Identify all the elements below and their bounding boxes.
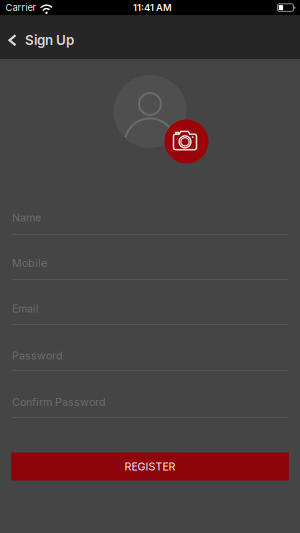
button[interactable]: Email: [12, 289, 288, 325]
staticText: REGISTER: [124, 460, 175, 473]
staticText: 11:41 AM: [133, 2, 172, 13]
button[interactable]: Name: [12, 199, 288, 235]
staticText: Sign Up: [25, 32, 74, 48]
button[interactable]: Mobile: [12, 244, 288, 280]
button[interactable]: Add profile photo: [164, 119, 208, 163]
button[interactable]: Confirm Password: [12, 382, 288, 418]
staticText: Password: [12, 349, 63, 362]
staticText: Mobile: [12, 257, 47, 269]
staticText: Carrier: [5, 2, 36, 13]
staticText: Confirm Password: [12, 396, 106, 408]
staticText: Name: [12, 211, 41, 224]
button[interactable]: Back: [4, 23, 20, 57]
button[interactable]: REGISTER: [11, 452, 289, 480]
staticText: Email: [12, 302, 39, 315]
button[interactable]: Password: [12, 335, 288, 371]
